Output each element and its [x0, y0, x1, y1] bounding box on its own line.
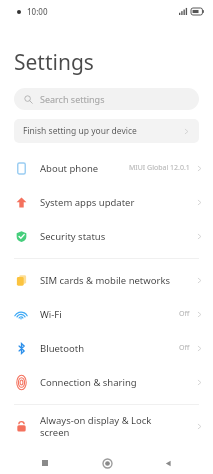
button[interactable]: Wi-Fi	[0, 297, 213, 331]
staticText: Off	[179, 309, 190, 319]
staticText: Off	[179, 343, 190, 353]
staticText: System apps updater	[40, 196, 135, 209]
button[interactable]: Connection & sharing	[0, 365, 213, 399]
button[interactable]: About phone	[0, 151, 213, 185]
button[interactable]: System apps updater	[0, 185, 213, 219]
staticText: Connection & sharing	[40, 376, 137, 389]
button[interactable]: Always-on display & Lock screen	[0, 409, 213, 443]
button[interactable]: Search settings	[14, 88, 199, 110]
staticText: Settings	[14, 48, 94, 77]
staticText: Security status	[40, 230, 106, 243]
button[interactable]: SIM cards & mobile networks	[0, 263, 213, 297]
button[interactable]: Finish setting up your device	[14, 119, 199, 143]
staticText: Always-on display & Lock screen	[40, 414, 152, 439]
staticText: About phone	[40, 162, 99, 175]
button[interactable]: Recents	[28, 452, 62, 474]
staticText: Finish setting up your device	[23, 125, 137, 137]
button[interactable]: Back	[151, 452, 185, 474]
staticText: MIUI Global 12.0.1	[129, 163, 190, 173]
staticText: 10:00	[27, 6, 48, 17]
staticText: Bluetooth	[40, 342, 85, 355]
staticText: Wi-Fi	[40, 308, 62, 321]
staticText: Search settings	[40, 93, 105, 105]
button[interactable]: Security status	[0, 219, 213, 253]
button[interactable]: Home	[90, 452, 124, 474]
staticText: SIM cards & mobile networks	[40, 274, 171, 287]
button[interactable]: Bluetooth	[0, 331, 213, 365]
